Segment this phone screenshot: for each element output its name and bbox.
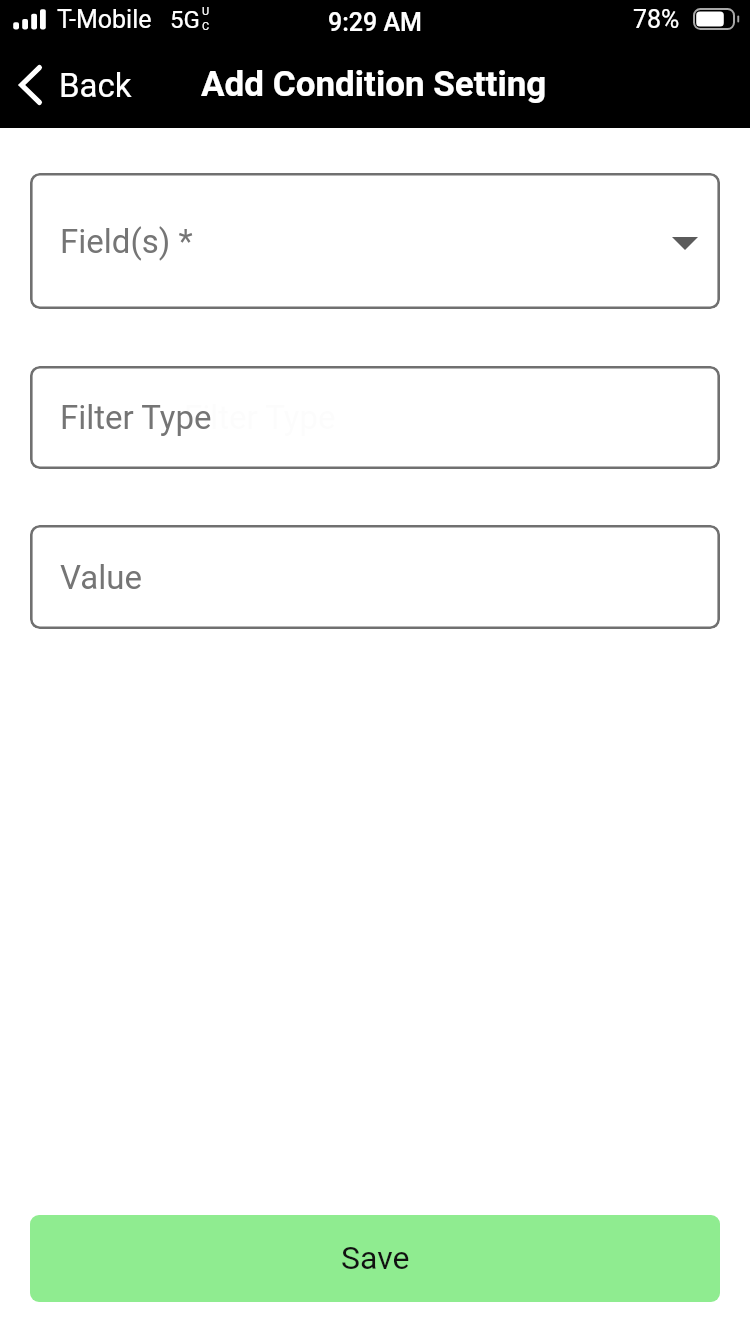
button[interactable]: Filter Type <box>30 366 720 469</box>
button[interactable]: Value <box>30 525 720 629</box>
staticText: Filter Type <box>184 398 336 437</box>
staticText: Save <box>341 1239 410 1277</box>
staticText: T-Mobile <box>57 5 152 34</box>
staticText: Value <box>60 558 142 597</box>
staticText: Back <box>59 66 132 105</box>
button[interactable]: Back <box>0 55 150 115</box>
staticText: Filter Type <box>60 398 212 437</box>
other: Open dropdown <box>672 237 698 250</box>
button[interactable]: Field(s) * <box>30 173 720 309</box>
button[interactable]: Save <box>30 1215 720 1302</box>
staticText: 9:29 AM <box>0 8 750 44</box>
staticText: 78% <box>633 5 680 34</box>
staticText: 5G <box>170 6 200 34</box>
staticText: U <box>202 5 210 18</box>
staticText: C <box>202 20 210 33</box>
staticText: Add Condition Setting <box>201 64 547 105</box>
staticText: Field(s) * <box>60 222 193 261</box>
